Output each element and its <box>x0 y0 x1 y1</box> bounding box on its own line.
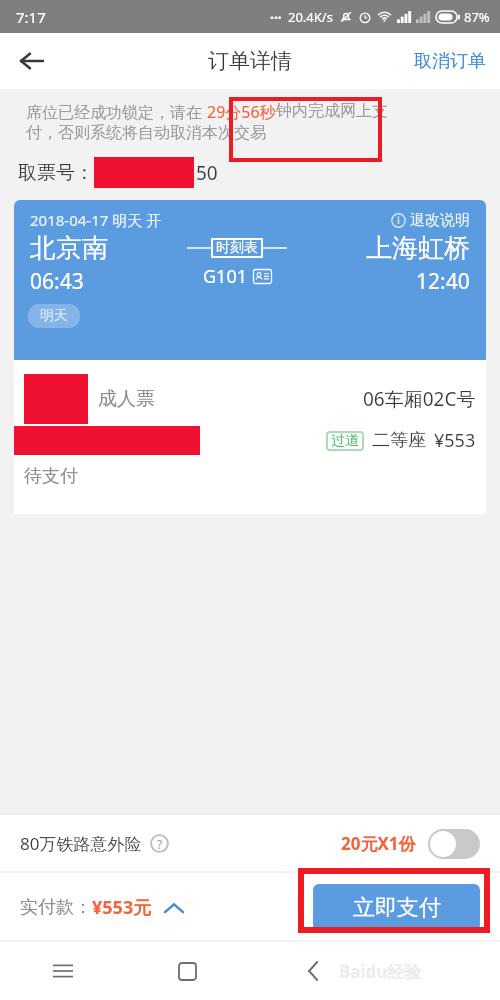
button[interactable]: 80万铁路意外险 <box>0 815 500 872</box>
staticText: 北京南 <box>30 232 108 265</box>
staticText: 80万铁路意外险 <box>20 832 142 855</box>
staticText: 06:43 <box>30 267 84 296</box>
staticText: 付，否则系统将自动取消本次交易 <box>26 123 266 143</box>
staticText: 退改说明 <box>410 211 470 230</box>
button[interactable]: 时刻表 <box>216 239 258 257</box>
staticText: ¥553 <box>434 428 476 453</box>
button[interactable]: Recents <box>0 942 125 1000</box>
button[interactable]: 取消订单 <box>400 40 500 83</box>
staticText: 12:40 <box>416 267 470 296</box>
staticText: 过道 <box>331 432 359 450</box>
button[interactable]: 实付款： <box>20 895 184 920</box>
staticText: ... <box>270 4 282 23</box>
staticText: 取票号： <box>18 161 94 185</box>
staticText: 取消订单 <box>414 50 486 73</box>
staticText: 29分56秒 <box>207 101 276 123</box>
staticText: Baidu经验 <box>339 960 422 983</box>
staticText: 上海虹桥 <box>366 232 470 265</box>
button[interactable]: 2018-04-17 明天 开 <box>14 200 486 360</box>
staticText: 2018-04-17 明天 开 <box>30 210 162 230</box>
staticText: 06车厢02C号 <box>363 386 476 412</box>
button[interactable]: Insurance toggle <box>428 829 480 859</box>
button[interactable]: Back <box>250 942 375 1000</box>
staticText: 20.4K/s <box>288 8 333 26</box>
staticText: 20元X1份 <box>341 832 416 855</box>
staticText: 待支付 <box>24 465 78 488</box>
staticText: ? <box>157 836 163 852</box>
staticText: 7:17 <box>16 7 46 27</box>
button[interactable]: 成人票 <box>14 360 486 514</box>
staticText: 订单详情 <box>208 48 292 74</box>
staticText: 实付款： <box>20 896 92 919</box>
button[interactable]: 立即支付 <box>313 884 480 931</box>
staticText: 二等座 <box>372 429 426 452</box>
button[interactable]: Home <box>125 942 250 1000</box>
staticText: 立即支付 <box>353 894 441 922</box>
staticText: 87% <box>464 8 490 26</box>
button[interactable]: Back <box>8 37 56 85</box>
staticText: 明天 <box>40 307 68 325</box>
staticText: 时刻表 <box>216 239 258 257</box>
staticText: ¥553元 <box>92 895 152 920</box>
staticText: 50 <box>196 160 218 186</box>
staticText: 席位已经成功锁定，请在 <box>26 101 207 123</box>
staticText: 钟内完成网上支 <box>276 101 388 121</box>
staticText: 成人票 <box>98 387 155 411</box>
staticText: G101 <box>203 264 247 289</box>
